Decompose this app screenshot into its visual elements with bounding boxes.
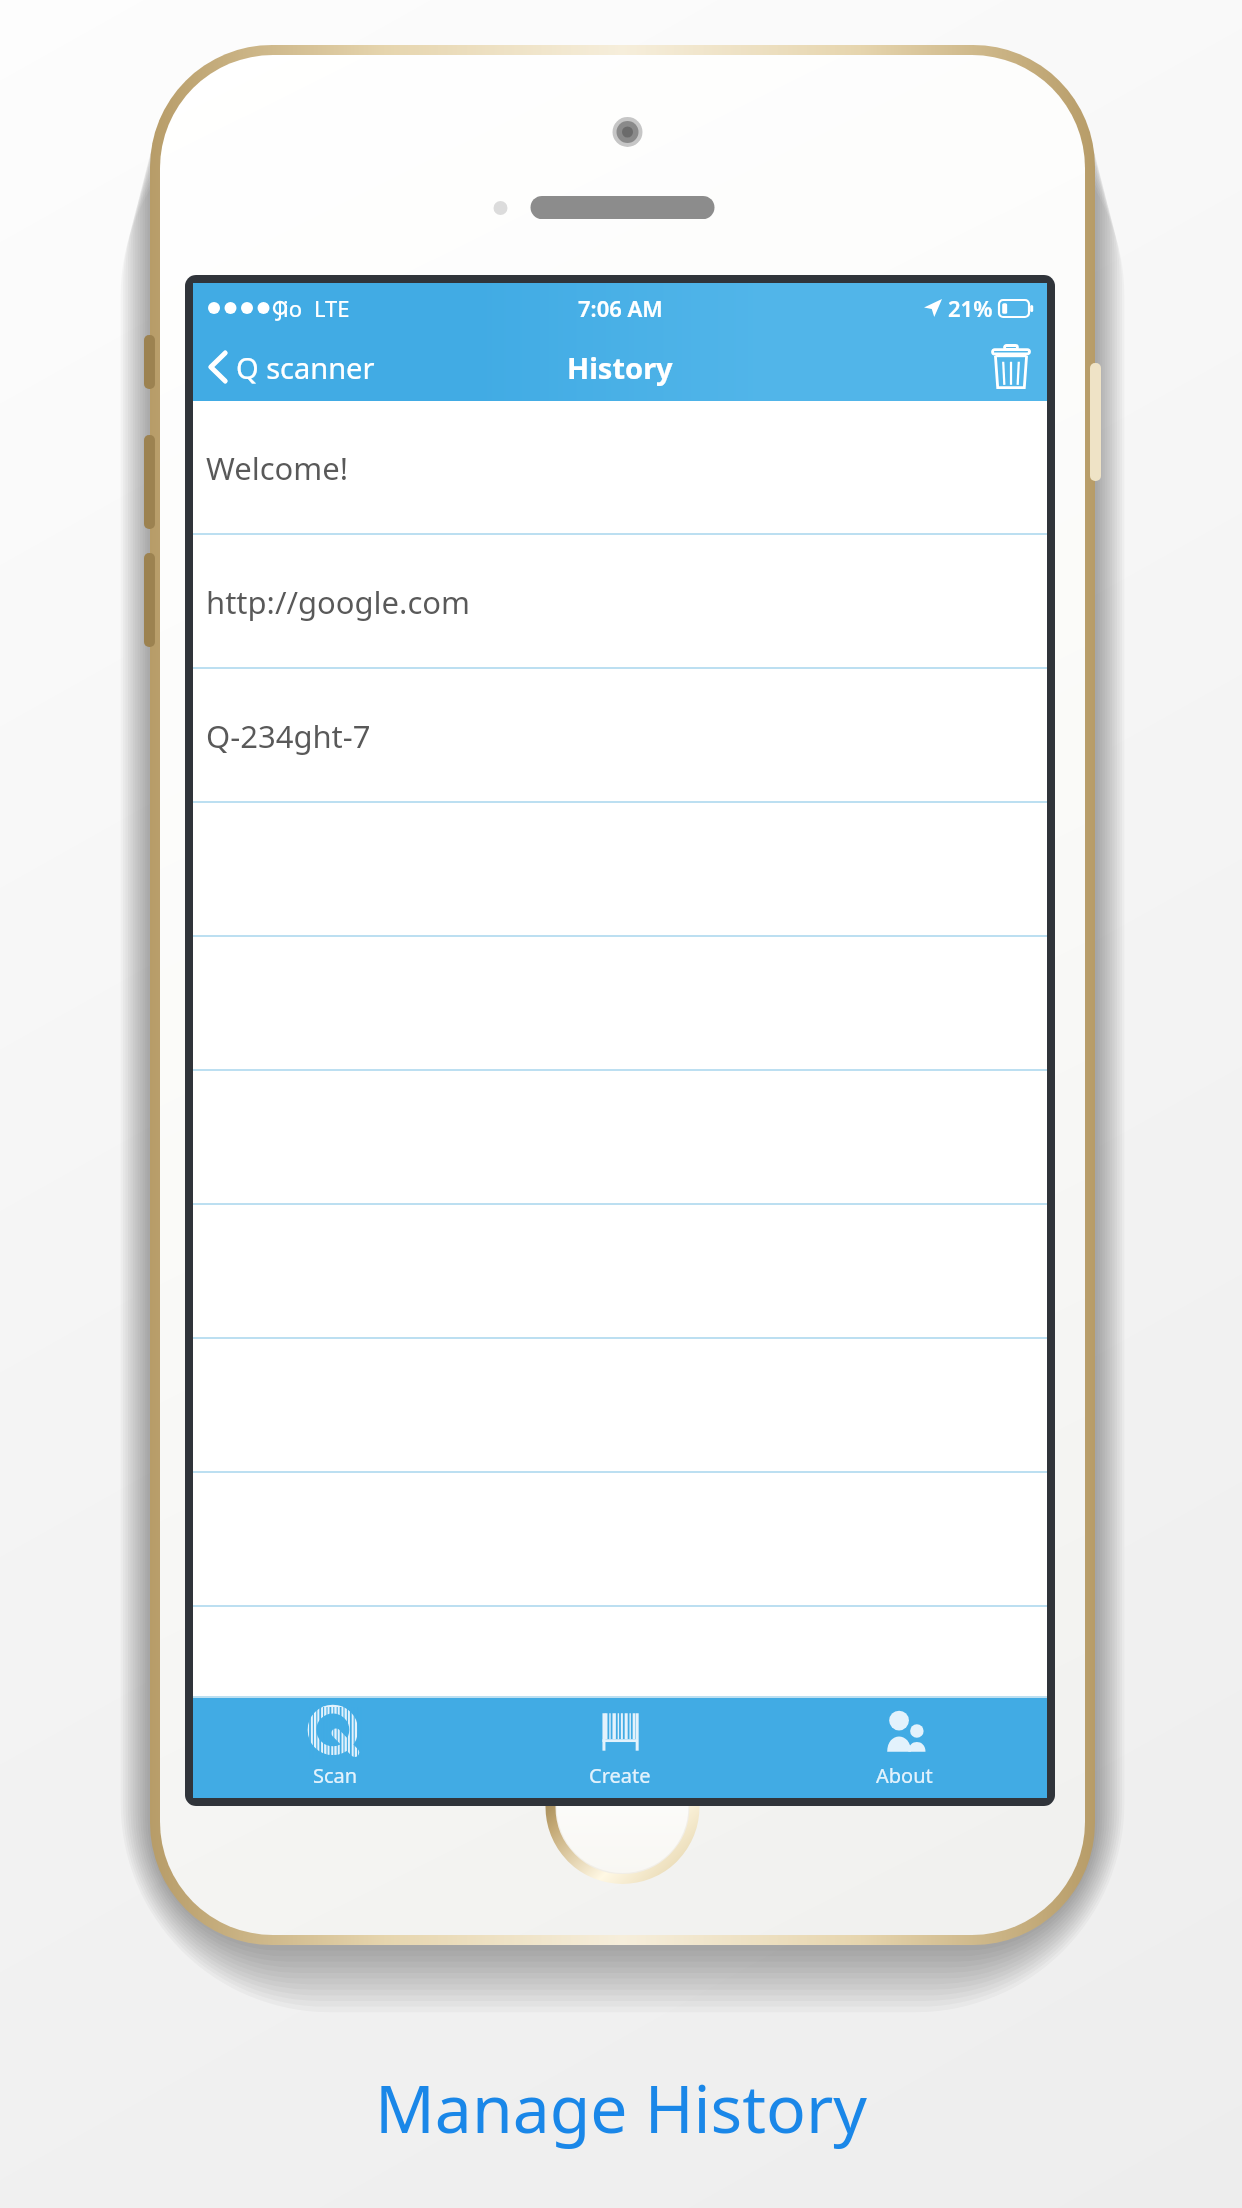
staticText: About xyxy=(876,1762,933,1789)
staticText: Jio xyxy=(277,293,302,323)
staticText: 7:06 AM xyxy=(578,293,663,323)
staticText: Q-234ght-7 xyxy=(206,715,371,757)
button[interactable] xyxy=(193,803,1047,937)
staticText: http://google.com xyxy=(206,581,471,623)
staticText: 21% xyxy=(948,293,993,323)
button[interactable]: Q scanner xyxy=(193,333,389,401)
staticText: Scan xyxy=(313,1762,358,1789)
button[interactable] xyxy=(193,937,1047,1071)
staticText: History xyxy=(567,348,673,387)
staticText: Welcome! xyxy=(206,447,349,489)
staticText: Create xyxy=(589,1762,651,1789)
button[interactable]: Delete history xyxy=(975,333,1047,401)
button[interactable] xyxy=(193,1205,1047,1339)
button[interactable] xyxy=(193,1339,1047,1473)
staticText: LTE xyxy=(314,293,350,323)
button[interactable] xyxy=(193,1607,1047,1698)
staticText: Q scanner xyxy=(236,348,375,387)
button[interactable]: Q-234ght-7 xyxy=(193,669,1047,803)
button[interactable]: Welcome! xyxy=(193,401,1047,535)
button[interactable] xyxy=(193,1473,1047,1607)
button[interactable]: Scan xyxy=(193,1698,477,1798)
button[interactable]: About xyxy=(762,1698,1047,1798)
button[interactable] xyxy=(193,1071,1047,1205)
button[interactable]: http://google.com xyxy=(193,535,1047,669)
staticText: Manage History xyxy=(375,2062,867,2152)
button[interactable]: Create xyxy=(477,1698,762,1798)
